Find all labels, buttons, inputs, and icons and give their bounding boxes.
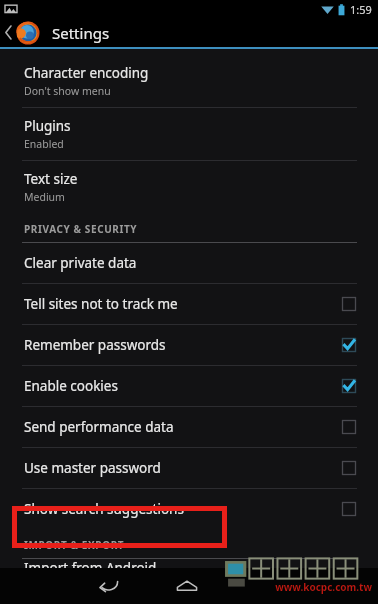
staticText: Text size [24,170,78,188]
button[interactable]: Home [169,568,205,604]
staticText: Clear private data [24,254,356,272]
staticText: Medium [24,190,65,204]
button[interactable]: Navigate up [0,18,44,47]
button[interactable]: Character encoding [0,55,378,107]
staticText: Use master password [24,459,342,477]
button[interactable]: Use master password [0,448,378,488]
staticText: Enabled [24,137,64,151]
staticText: 1:59 [350,2,372,17]
staticText: Send performance data [24,418,342,436]
staticText: www.kocpc.com.tw [275,580,372,594]
staticText: IMPORT & EXPORT [24,538,125,552]
staticText: Tell sites not to track me [24,295,342,313]
button[interactable]: Text size [0,161,378,213]
button[interactable]: Enable cookies [0,366,378,406]
button[interactable]: Import from Android [0,559,378,568]
staticText: Remember passwords [24,336,342,354]
staticText: Settings [52,23,110,43]
button[interactable]: Plugins [0,108,378,160]
button[interactable]: Send performance data [0,407,378,447]
staticText: Plugins [24,117,71,135]
staticText: Show search suggestions [24,500,342,518]
button[interactable]: Remember passwords [0,325,378,365]
staticText: PRIVACY & SECURITY [24,222,138,236]
staticText: Character encoding [24,64,149,82]
button[interactable]: Tell sites not to track me [0,284,378,324]
staticText: Don't show menu [24,84,111,98]
button[interactable]: Clear private data [0,243,378,283]
button[interactable]: Show search suggestions [0,489,378,529]
staticText: Import from Android [24,559,356,568]
staticText: Enable cookies [24,377,342,395]
button[interactable]: Back [90,568,126,604]
